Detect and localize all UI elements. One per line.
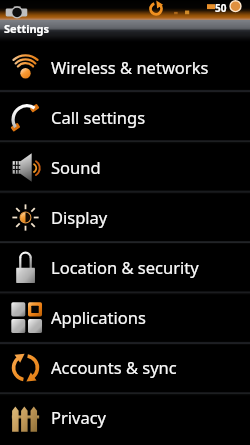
button[interactable]: Display: [0, 192, 250, 242]
staticText: Privacy: [51, 406, 107, 428]
staticText: Accounts & sync: [51, 356, 177, 378]
button[interactable]: Applications: [0, 292, 250, 342]
staticText: Location & security: [51, 256, 199, 278]
button[interactable]: Privacy: [0, 392, 250, 442]
staticText: Display: [51, 206, 108, 228]
staticText: Call settings: [51, 106, 146, 128]
button[interactable]: Accounts & sync: [0, 342, 250, 392]
staticText: Applications: [51, 306, 146, 328]
staticText: Settings: [4, 21, 50, 36]
other: Screenshot captured: [3, 3, 30, 19]
button[interactable]: Wireless & networks: [0, 42, 250, 92]
staticText: 50: [215, 1, 227, 15]
button[interactable]: Call settings: [0, 92, 250, 142]
staticText: Sound: [51, 156, 101, 178]
button[interactable]: Sound: [0, 142, 250, 192]
staticText: Wireless & networks: [51, 56, 209, 78]
button[interactable]: Location & security: [0, 242, 250, 292]
